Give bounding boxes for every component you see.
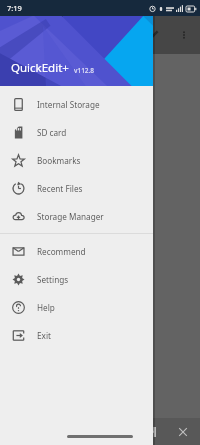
staticText: Bookmarks xyxy=(37,155,81,166)
button[interactable]: SD card xyxy=(0,118,153,146)
staticText: Help xyxy=(37,302,55,313)
button[interactable]: Recommend xyxy=(0,237,153,265)
button[interactable]: More options xyxy=(174,25,194,45)
staticText: QuickEdit+ xyxy=(11,60,69,76)
button[interactable]: Close xyxy=(174,423,192,441)
staticText: Storage Manager xyxy=(37,211,104,222)
button[interactable]: Recent Files xyxy=(0,174,153,202)
button[interactable]: Settings xyxy=(0,265,153,293)
staticText: Recommend xyxy=(37,246,86,257)
button[interactable]: Bookmarks xyxy=(0,146,153,174)
staticText: v112.8 xyxy=(74,66,95,75)
staticText: Internal Storage xyxy=(37,99,100,110)
staticText: SD card xyxy=(37,127,67,138)
button[interactable]: Save xyxy=(142,423,160,441)
button[interactable]: Edit xyxy=(144,25,164,45)
staticText: 7:19 xyxy=(7,3,22,13)
staticText: Exit xyxy=(37,330,51,341)
staticText: Settings xyxy=(37,274,69,285)
button[interactable]: Storage Manager xyxy=(0,202,153,230)
button[interactable]: Help xyxy=(0,293,153,321)
button[interactable]: Internal Storage xyxy=(0,90,153,118)
staticText: Recent Files xyxy=(37,183,83,194)
button[interactable]: Exit xyxy=(0,321,153,349)
